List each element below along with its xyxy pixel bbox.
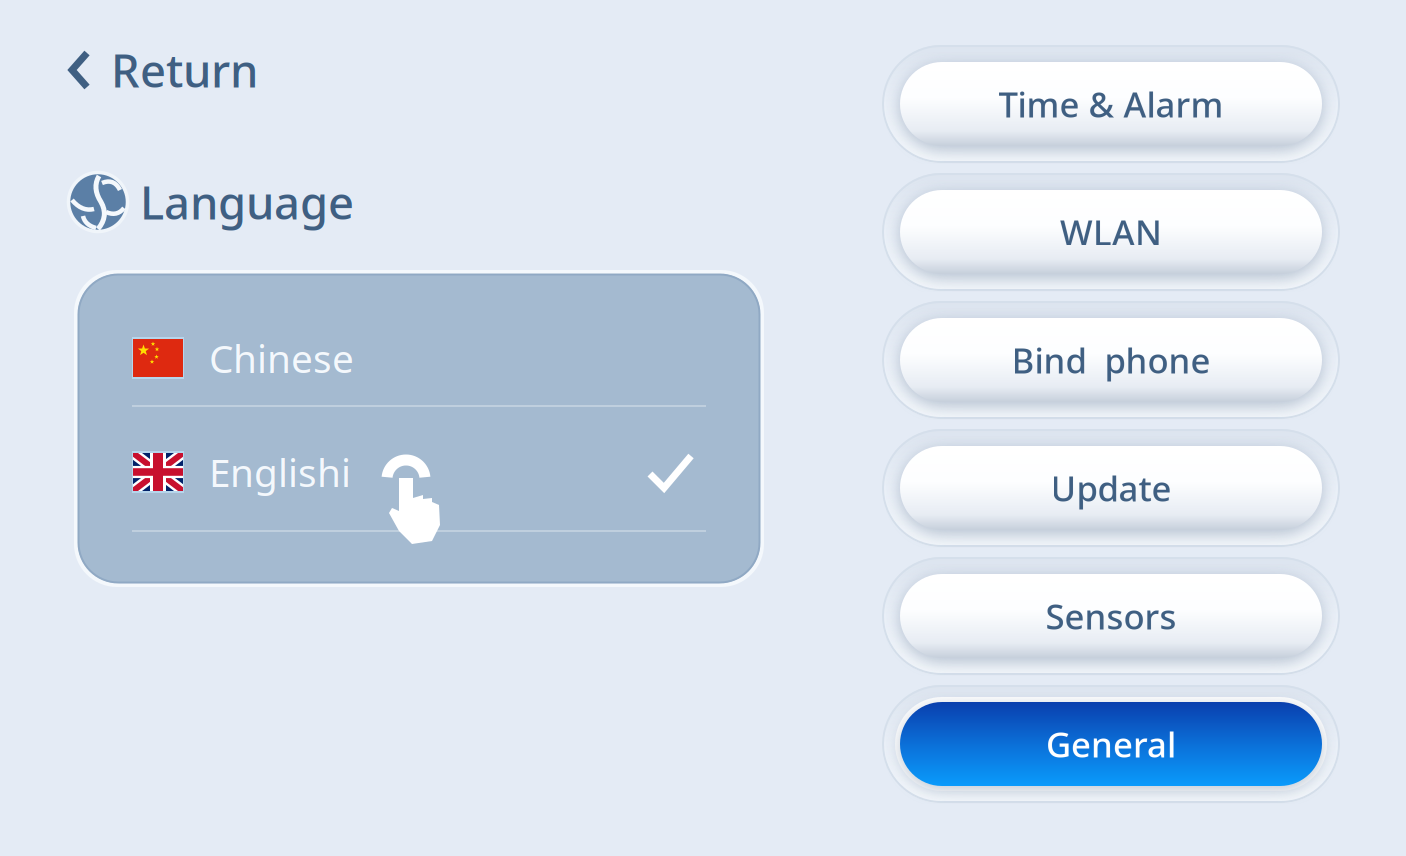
staticText: Bind phone [1011,337,1210,383]
button[interactable]: Chinese [78,314,760,402]
button[interactable]: Sensors [882,557,1340,675]
staticText: General [1046,721,1176,767]
staticText: Update [1050,465,1171,511]
button[interactable]: Update [882,429,1340,547]
staticText: Language [140,172,354,232]
button[interactable]: WLAN [882,173,1340,291]
button[interactable]: General [882,685,1340,803]
staticText: Return [111,40,258,100]
staticText: Chinese [209,332,354,384]
staticText: WLAN [1060,209,1162,255]
button[interactable]: Bind phone [882,301,1340,419]
staticText: Englishi [209,446,351,498]
staticText: Sensors [1045,593,1176,639]
button[interactable]: Time & Alarm [882,45,1340,163]
button[interactable]: Return [68,50,258,90]
button[interactable]: Englishi [78,428,760,516]
staticText: Time & Alarm [998,81,1223,127]
